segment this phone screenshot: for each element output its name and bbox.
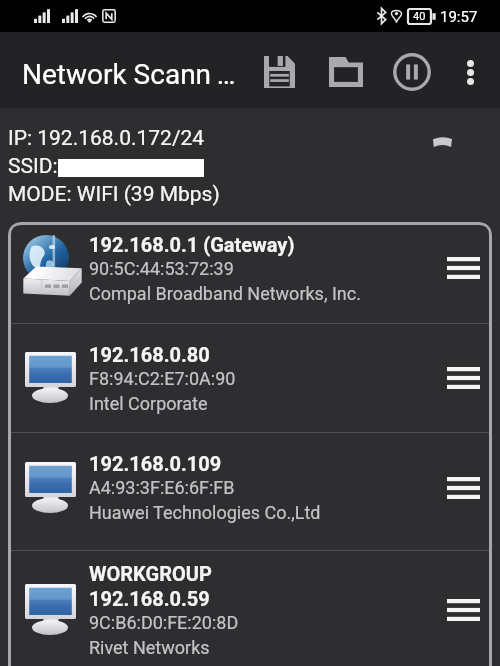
staticText: Huawei Technologies Co.,Ltd xyxy=(89,502,321,523)
button[interactable]: More options xyxy=(452,48,488,96)
staticText: Rivet Networks xyxy=(89,637,210,658)
button[interactable] xyxy=(8,222,492,323)
staticText: IP: 192.168.0.172/24 xyxy=(8,126,205,151)
button[interactable]: Device options xyxy=(435,241,491,295)
staticText: 90:5C:44:53:72:39 xyxy=(89,258,234,279)
staticText: 192.168.0.109 xyxy=(89,452,222,475)
button[interactable] xyxy=(8,551,492,666)
staticText: WORKGROUP xyxy=(89,562,212,585)
staticText: MODE: WIFI (39 Mbps) xyxy=(8,182,220,207)
staticText: 192.168.0.59 xyxy=(89,587,210,610)
button[interactable]: Open folder xyxy=(322,48,370,96)
staticText: 19:57 xyxy=(440,8,478,26)
button[interactable]: Pause scan xyxy=(388,48,436,96)
staticText: SSID: xyxy=(8,154,58,179)
staticText: 40 xyxy=(413,10,426,23)
staticText: A4:93:3F:E6:6F:FB xyxy=(89,477,235,498)
staticText: Compal Broadband Networks, Inc. xyxy=(89,283,361,304)
button[interactable]: Device options xyxy=(435,461,491,515)
button[interactable]: Device options xyxy=(435,583,491,637)
button[interactable]: Save xyxy=(255,48,303,96)
staticText: Network Scann … xyxy=(22,58,236,91)
staticText: 192.168.0.80 xyxy=(89,343,210,366)
staticText: 9C:B6:D0:FE:20:8D xyxy=(89,612,239,633)
button[interactable] xyxy=(8,324,492,432)
staticText: Intel Corporate xyxy=(89,393,208,414)
staticText: F8:94:C2:E7:0A:90 xyxy=(89,368,236,389)
button[interactable] xyxy=(8,433,492,550)
button[interactable]: Device options xyxy=(435,351,491,405)
staticText: 192.168.0.1 (Gateway) xyxy=(89,233,295,256)
